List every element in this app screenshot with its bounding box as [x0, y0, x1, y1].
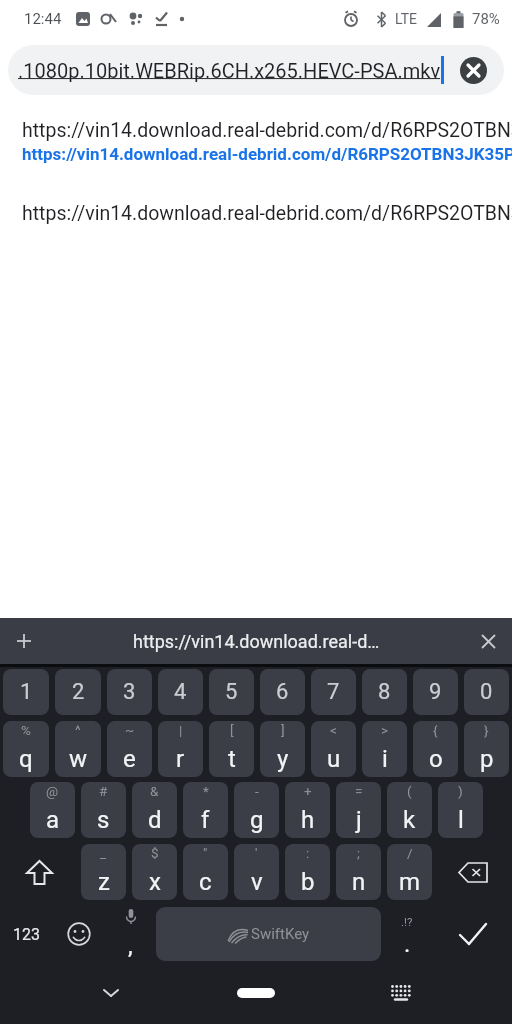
button[interactable]: '	[234, 844, 279, 900]
staticText: =	[355, 783, 363, 799]
staticText: q	[19, 745, 33, 773]
button[interactable]: (	[387, 782, 432, 838]
button[interactable]: 0	[464, 669, 509, 715]
staticText: 1	[20, 679, 33, 705]
staticText: 3	[123, 679, 136, 705]
button[interactable]: 3	[107, 669, 152, 715]
staticText: c	[199, 868, 212, 896]
button[interactable]: 7	[311, 669, 356, 715]
button[interactable]: ^	[55, 721, 101, 777]
staticText: 12:44	[24, 10, 62, 28]
staticText: 78%	[472, 10, 500, 28]
staticText: k	[403, 806, 416, 834]
button[interactable]: /	[387, 844, 432, 900]
staticText: ,	[128, 932, 133, 960]
staticText: 6	[276, 679, 289, 705]
staticText: (	[407, 783, 412, 799]
staticText: >	[381, 722, 389, 738]
staticText: a	[46, 806, 60, 834]
staticText: ~	[125, 722, 135, 738]
button[interactable]: %	[3, 721, 49, 777]
staticText: h	[301, 806, 315, 834]
button[interactable]	[180, 962, 332, 1024]
staticText: *	[203, 783, 209, 799]
button[interactable]: ;	[336, 844, 381, 900]
button[interactable]: &	[132, 782, 177, 838]
button[interactable]: )	[438, 782, 483, 838]
button[interactable]	[460, 57, 487, 84]
staticText: https://vin14.download.real-d…	[133, 631, 380, 652]
button[interactable]: <	[311, 721, 356, 777]
button[interactable]: =	[336, 782, 381, 838]
staticText: +	[304, 783, 312, 799]
staticText: d	[148, 806, 162, 834]
staticText: 0	[480, 679, 493, 705]
staticText: |	[179, 722, 183, 738]
button[interactable]: 4	[158, 669, 203, 715]
button[interactable]: ]	[260, 721, 305, 777]
staticText: #	[99, 783, 108, 799]
button[interactable]	[0, 618, 48, 664]
staticText: .	[404, 930, 411, 958]
button[interactable]: 5	[209, 669, 254, 715]
staticText: e	[123, 745, 136, 773]
button[interactable]: *	[183, 782, 228, 838]
staticText: j	[356, 806, 362, 834]
button[interactable]: https://vin14.download.real-debrid.com/d…	[22, 119, 512, 164]
staticText: 4	[174, 679, 187, 705]
button[interactable]	[435, 844, 512, 900]
button[interactable]: }	[464, 721, 509, 777]
staticText: o	[429, 745, 443, 773]
staticText: LTE	[395, 11, 417, 27]
button[interactable]: |	[158, 721, 203, 777]
button[interactable]: +	[285, 782, 330, 838]
button[interactable]: ,	[105, 906, 156, 962]
staticText: @	[46, 783, 59, 799]
button[interactable]: -	[234, 782, 279, 838]
staticText: l	[458, 806, 464, 834]
button[interactable]: 9	[413, 669, 458, 715]
staticText: r	[176, 745, 185, 773]
button[interactable]: .!?	[381, 906, 433, 962]
button[interactable]: .1080p.10bit.WEBRip.6CH.x265.HEVC-PSA.mk…	[8, 45, 504, 95]
button[interactable]: #	[81, 782, 126, 838]
button[interactable]: https://vin14.download.real-debrid.com/d…	[22, 202, 512, 225]
button[interactable]: $	[132, 844, 177, 900]
button[interactable]	[0, 844, 78, 900]
staticText: y	[277, 745, 289, 773]
staticText: :	[306, 845, 310, 861]
staticText: https://vin14.download.real-debrid.com/d…	[22, 202, 512, 225]
button[interactable]	[332, 962, 512, 1024]
button[interactable]: 123	[0, 906, 52, 962]
button[interactable]: SwiftKey	[156, 907, 381, 961]
button[interactable]: 6	[260, 669, 305, 715]
button[interactable]: 8	[362, 669, 407, 715]
button[interactable]: [	[209, 721, 254, 777]
button[interactable]: {	[413, 721, 458, 777]
staticText: .!?	[401, 915, 413, 928]
staticText: $	[151, 845, 159, 861]
button[interactable]	[464, 618, 512, 664]
button[interactable]: >	[362, 721, 407, 777]
staticText: 123	[13, 925, 40, 944]
button[interactable]: 2	[55, 669, 101, 715]
staticText: {	[433, 722, 438, 738]
staticText: u	[327, 745, 341, 773]
button[interactable]: "	[183, 844, 228, 900]
staticText: 5	[225, 679, 238, 705]
staticText: 8	[378, 679, 391, 705]
staticText: ]	[281, 722, 285, 738]
staticText: '	[255, 845, 258, 861]
button[interactable]	[0, 962, 180, 1024]
staticText: p	[480, 745, 494, 773]
button[interactable]: ~	[107, 721, 152, 777]
button[interactable]: @	[30, 782, 75, 838]
button[interactable]	[433, 906, 512, 962]
staticText: https://vin14.download.real-debrid.com/d…	[22, 144, 512, 164]
staticText: f	[201, 806, 210, 834]
staticText: t	[228, 745, 236, 773]
button[interactable]: 1	[3, 669, 49, 715]
button[interactable]: _	[81, 844, 126, 900]
button[interactable]: :	[285, 844, 330, 900]
button[interactable]	[52, 906, 105, 962]
